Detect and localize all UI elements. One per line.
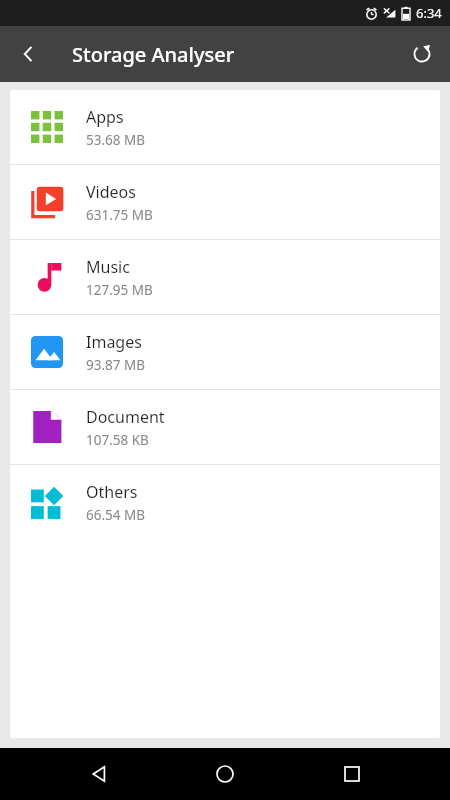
button[interactable]: Others xyxy=(10,465,440,539)
button[interactable]: Music xyxy=(10,240,440,314)
staticText: Others xyxy=(86,481,138,503)
button[interactable]: Back xyxy=(6,32,50,76)
button[interactable]: Document xyxy=(10,390,440,464)
staticText: Music xyxy=(86,256,130,278)
staticText: Apps xyxy=(86,106,124,128)
button[interactable]: Home xyxy=(197,748,253,800)
button[interactable]: Refresh xyxy=(400,32,444,76)
staticText: Videos xyxy=(86,181,136,203)
staticText: Images xyxy=(86,331,142,353)
button[interactable]: Images xyxy=(10,315,440,389)
button[interactable]: Videos xyxy=(10,165,440,239)
staticText: 53.68 MB xyxy=(86,131,146,149)
staticText: 107.58 KB xyxy=(86,431,149,449)
staticText: Storage Analyser xyxy=(72,41,235,68)
button[interactable]: Recents xyxy=(324,748,380,800)
staticText: 631.75 MB xyxy=(86,206,153,224)
staticText: 6:34 xyxy=(416,4,442,22)
staticText: 66.54 MB xyxy=(86,506,146,524)
staticText: Document xyxy=(86,406,165,428)
button[interactable]: Apps xyxy=(10,90,440,164)
button[interactable]: Back xyxy=(71,748,127,800)
staticText: 93.87 MB xyxy=(86,356,146,374)
staticText: 127.95 MB xyxy=(86,281,153,299)
